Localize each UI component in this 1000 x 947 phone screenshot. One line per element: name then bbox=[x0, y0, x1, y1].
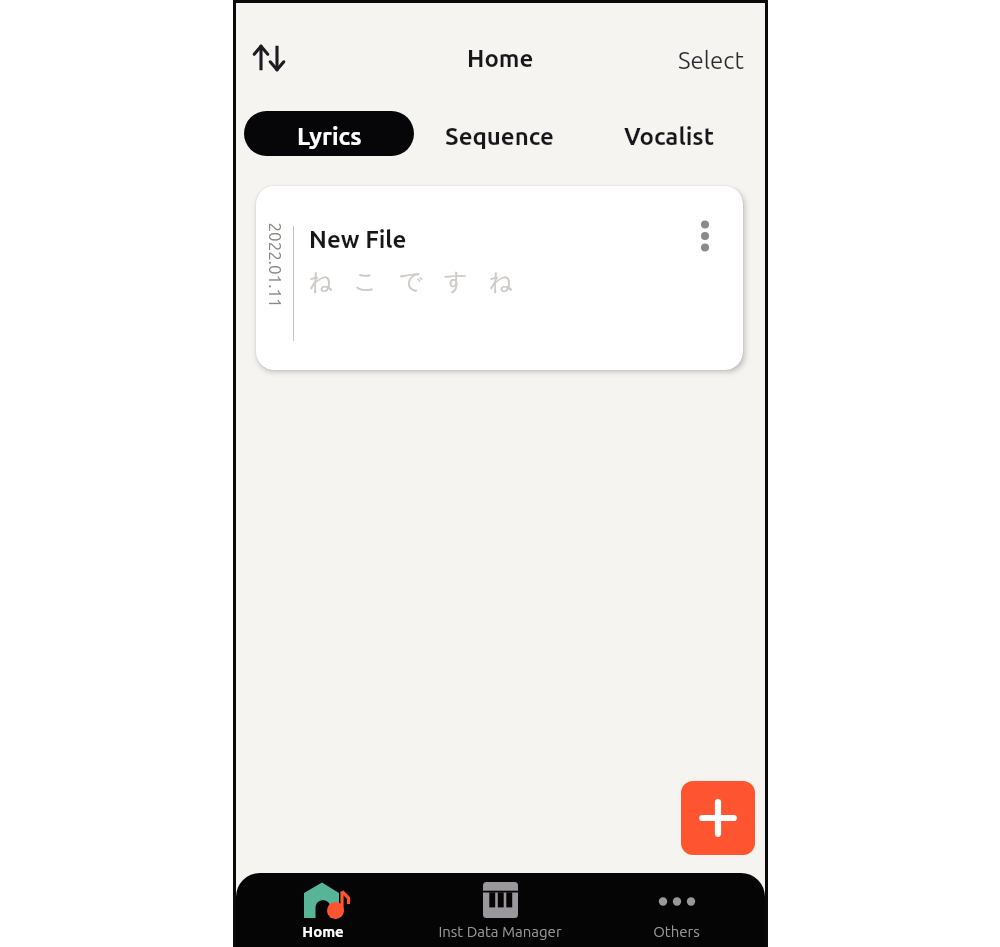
staticText: こ bbox=[354, 267, 378, 296]
button[interactable]: Home bbox=[236, 873, 413, 947]
button[interactable]: Create new file bbox=[681, 781, 755, 855]
button[interactable]: Lyrics bbox=[244, 111, 414, 156]
staticText: で bbox=[399, 267, 423, 296]
staticText: 2022.01.11 bbox=[265, 222, 284, 308]
button[interactable]: More options bbox=[684, 215, 726, 257]
staticText: Vocalist bbox=[624, 123, 715, 150]
button[interactable]: Sort order bbox=[244, 33, 293, 82]
staticText: New File bbox=[309, 226, 407, 253]
button[interactable]: 2022.01.11 bbox=[256, 186, 743, 370]
button[interactable]: Inst Data Manager bbox=[413, 873, 589, 947]
staticText: ね bbox=[489, 267, 513, 296]
staticText: Select bbox=[678, 47, 744, 74]
button[interactable]: Select bbox=[672, 38, 750, 80]
staticText: Inst Data Manager bbox=[438, 923, 562, 940]
staticText: Others bbox=[653, 923, 700, 940]
staticText: Home bbox=[467, 45, 534, 72]
staticText: Lyrics bbox=[297, 123, 362, 150]
button[interactable]: Others bbox=[589, 873, 765, 947]
staticText: Home bbox=[302, 923, 344, 940]
staticText: ね bbox=[309, 267, 333, 296]
staticText: す bbox=[444, 267, 468, 296]
button[interactable]: Sequence bbox=[414, 111, 585, 156]
staticText: Sequence bbox=[445, 123, 554, 150]
button[interactable]: Vocalist bbox=[585, 111, 754, 156]
